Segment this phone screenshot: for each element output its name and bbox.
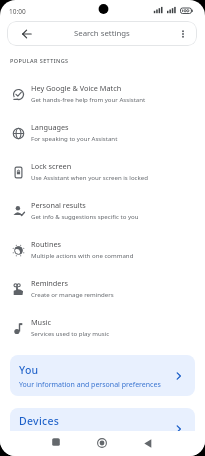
staticText: Routines <box>31 239 62 249</box>
button[interactable] <box>132 431 164 456</box>
staticText: Get info & suggestions specific to you <box>31 212 139 220</box>
staticText: Lock screen <box>31 161 72 171</box>
staticText: For speaking to your Assistant <box>31 134 118 142</box>
staticText: Reminders <box>31 278 68 288</box>
button[interactable]: Devices <box>10 408 195 449</box>
staticText: Your information and personal preference… <box>19 380 161 390</box>
button[interactable]: Reminders <box>0 270 205 309</box>
button[interactable]: Personal results <box>0 192 205 231</box>
button[interactable] <box>86 431 118 456</box>
button[interactable]: Music <box>0 309 205 348</box>
staticText: Multiple actions with one command <box>31 251 134 259</box>
staticText: Music <box>31 317 52 327</box>
button[interactable]: Lock screen <box>0 153 205 192</box>
staticText: Use Assistant when your screen is locked <box>31 173 148 181</box>
staticText: Create or manage reminders <box>31 290 114 298</box>
button[interactable]: You <box>10 355 195 396</box>
staticText: Personal results <box>31 200 86 210</box>
staticText: POPULAR SETTINGS <box>10 57 69 64</box>
staticText: Devices <box>19 414 60 428</box>
staticText: Hey Google & Voice Match <box>31 83 122 93</box>
staticText: Languages <box>31 122 69 132</box>
button[interactable]: Hey Google & Voice Match <box>0 75 205 114</box>
staticText: 10:00 <box>9 7 26 16</box>
button[interactable] <box>40 431 72 456</box>
staticText: You <box>19 363 39 377</box>
staticText: Services used to play music <box>31 329 110 337</box>
staticText: Get hands-free help from your Assistant <box>31 95 146 103</box>
button[interactable]: Languages <box>0 114 205 153</box>
button[interactable]: Search settings <box>7 21 197 46</box>
staticText: Search settings <box>74 28 130 39</box>
button[interactable]: Routines <box>0 231 205 270</box>
